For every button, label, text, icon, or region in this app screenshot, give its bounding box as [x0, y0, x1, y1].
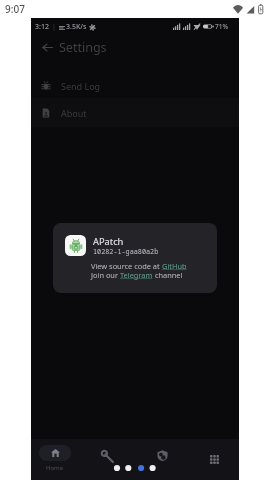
button[interactable]: Telegram [120, 270, 153, 280]
staticText: | [52, 22, 56, 32]
button[interactable]: Security [157, 450, 168, 461]
staticText: Home [46, 464, 64, 472]
staticText: View source code at [91, 261, 162, 271]
button[interactable]: Send Log [31, 71, 239, 100]
button[interactable]: Home [39, 445, 71, 472]
staticText: APatch [93, 235, 124, 248]
staticText: channel [153, 270, 183, 280]
button[interactable]: All apps [210, 455, 219, 464]
staticText: 71% [215, 22, 228, 31]
staticText: 3:12 [35, 22, 49, 32]
staticText: About [61, 107, 87, 119]
staticText: 9:07 [5, 2, 25, 16]
button[interactable]: Back [37, 37, 57, 57]
staticText: 3.5K/s [66, 22, 87, 32]
staticText: Settings [59, 39, 107, 56]
button[interactable]: GitHub [162, 261, 187, 271]
staticText: Send Log [61, 80, 101, 92]
button[interactable]: Tools [101, 450, 114, 463]
staticText: Join our [91, 270, 120, 280]
button[interactable]: About [31, 98, 239, 127]
staticText: 10282-1-gaa80a2b [93, 247, 159, 256]
